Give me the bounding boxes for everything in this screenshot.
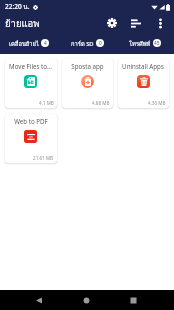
staticText: 22:20 น. <box>5 2 30 12</box>
button[interactable]: Move Files to… <box>5 59 57 108</box>
staticText: 4.88 MB <box>92 100 110 106</box>
button[interactable]: Home <box>76 290 96 310</box>
staticText: เคลื่อนย้ายไ <box>9 39 39 48</box>
staticText: 45 <box>154 40 160 47</box>
button[interactable]: Settings <box>100 14 124 32</box>
button[interactable]: การ์ด SD <box>58 32 116 54</box>
button[interactable]: Uninstall Apps <box>118 59 169 108</box>
staticText: 4.1 MB <box>39 100 54 106</box>
staticText: 4.36 MB <box>148 100 166 106</box>
staticText: 21.61 MB <box>33 155 54 161</box>
staticText: Web to PDF <box>14 117 48 125</box>
staticText: ย้ายแอพ <box>5 16 40 31</box>
button[interactable]: Web to PDF <box>5 114 57 163</box>
staticText: Move Files to… <box>9 62 52 70</box>
staticText: Uninstall Apps <box>122 62 164 70</box>
staticText: โทรศัพท์ <box>129 39 151 48</box>
button[interactable]: Sposta app <box>62 59 113 108</box>
button[interactable]: โทรศัพท์ <box>116 32 174 54</box>
button[interactable]: เคลื่อนย้ายไ <box>0 32 58 54</box>
button[interactable]: Recents <box>123 290 143 310</box>
staticText: 0 <box>99 40 102 47</box>
button[interactable]: Sort <box>124 14 148 32</box>
staticText: Sposta app <box>71 62 104 70</box>
staticText: 4 <box>44 40 47 47</box>
button[interactable]: More options <box>148 14 172 32</box>
staticText: การ์ด SD <box>71 39 94 48</box>
button[interactable]: Back <box>29 290 49 310</box>
